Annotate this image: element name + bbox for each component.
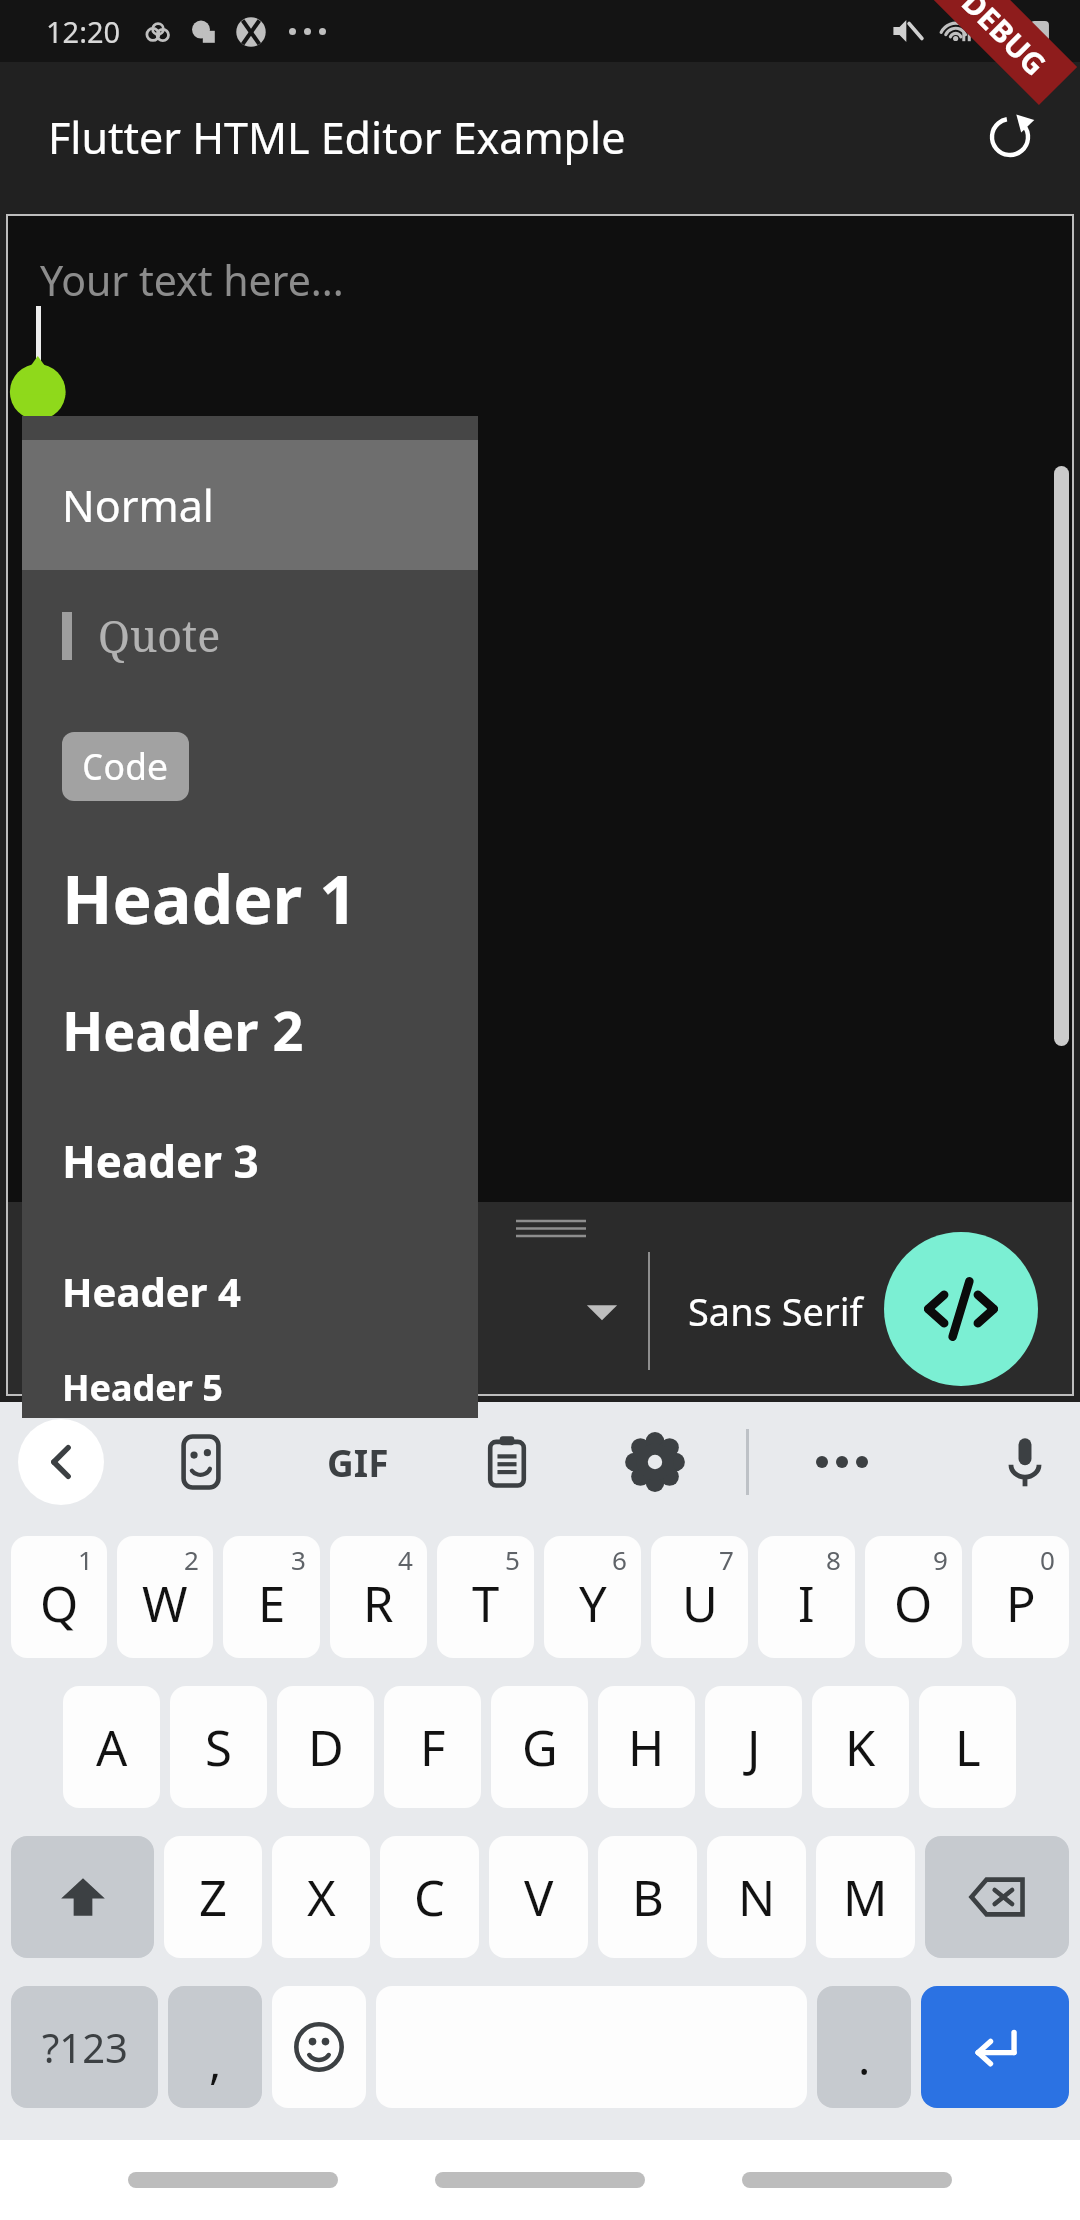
staticText: L bbox=[955, 1714, 981, 1781]
staticText: S bbox=[205, 1714, 232, 1781]
staticText: 9 bbox=[933, 1542, 948, 1577]
button[interactable]: X bbox=[272, 1836, 370, 1958]
button[interactable]: L bbox=[919, 1686, 1016, 1808]
staticText: Header 3 bbox=[62, 1131, 259, 1191]
button[interactable]: N bbox=[707, 1836, 806, 1958]
button[interactable]: K bbox=[812, 1686, 909, 1808]
button[interactable]: 5 bbox=[437, 1536, 534, 1658]
staticText: 8 bbox=[826, 1542, 841, 1577]
staticText: Z bbox=[199, 1864, 228, 1931]
button[interactable]: J bbox=[705, 1686, 802, 1808]
staticText: X bbox=[307, 1864, 336, 1931]
staticText: Q bbox=[40, 1570, 79, 1637]
button[interactable]: Header 1 bbox=[22, 832, 478, 964]
button[interactable]: Voice input bbox=[988, 1425, 1062, 1499]
staticText: Header 5 bbox=[62, 1363, 223, 1412]
button[interactable]: Header 4 bbox=[22, 1226, 478, 1356]
staticText: B bbox=[632, 1864, 664, 1931]
button[interactable]: A bbox=[63, 1686, 160, 1808]
button[interactable]: Code bbox=[22, 700, 478, 832]
button[interactable]: F bbox=[384, 1686, 481, 1808]
staticText: 6 bbox=[612, 1542, 627, 1577]
button[interactable]: V bbox=[489, 1836, 588, 1958]
button[interactable] bbox=[128, 2172, 338, 2188]
staticText: 5 bbox=[505, 1542, 520, 1577]
button[interactable]: Enter bbox=[921, 1986, 1069, 2108]
button[interactable]: Header 3 bbox=[22, 1096, 478, 1226]
button[interactable]: 0 bbox=[972, 1536, 1069, 1658]
staticText: V bbox=[524, 1864, 554, 1931]
button[interactable]: Emoji bbox=[272, 1986, 366, 2108]
button[interactable]: Header 5 bbox=[22, 1356, 478, 1418]
button[interactable]: ?123 bbox=[11, 1986, 158, 2108]
button[interactable]: 9 bbox=[865, 1536, 962, 1658]
button[interactable]: Refresh bbox=[968, 95, 1052, 179]
button[interactable]: . bbox=[817, 1986, 911, 2108]
staticText: Flutter HTML Editor Example bbox=[48, 108, 626, 167]
button[interactable]: M bbox=[816, 1836, 915, 1958]
button[interactable]: 4 bbox=[330, 1536, 427, 1658]
button[interactable]: H bbox=[598, 1686, 695, 1808]
button[interactable]: S bbox=[170, 1686, 267, 1808]
button[interactable]: Stickers bbox=[164, 1425, 238, 1499]
button[interactable]: 1 bbox=[11, 1536, 107, 1658]
staticText: D bbox=[308, 1714, 344, 1781]
button[interactable]: Toggle code view bbox=[884, 1232, 1038, 1386]
button[interactable]: G bbox=[491, 1686, 588, 1808]
button[interactable]: Clipboard bbox=[470, 1425, 544, 1499]
button[interactable]: 7 bbox=[651, 1536, 748, 1658]
button[interactable]: Normal bbox=[22, 440, 478, 570]
staticText: GIF bbox=[327, 1437, 389, 1487]
button[interactable]: D bbox=[277, 1686, 374, 1808]
staticText: 1 bbox=[78, 1542, 93, 1577]
staticText: K bbox=[845, 1714, 876, 1781]
staticText: H bbox=[628, 1714, 665, 1781]
staticText: 4 bbox=[398, 1542, 413, 1577]
staticText: Normal bbox=[62, 476, 214, 535]
staticText: , bbox=[209, 2030, 222, 2093]
staticText: F bbox=[420, 1714, 446, 1781]
button[interactable]: Quote bbox=[22, 570, 478, 700]
button[interactable]: Shift bbox=[11, 1836, 154, 1958]
staticText: U bbox=[682, 1570, 718, 1637]
staticText: 3 bbox=[291, 1542, 306, 1577]
staticText: 7 bbox=[719, 1542, 734, 1577]
staticText: 12:20 bbox=[46, 12, 121, 51]
button[interactable]: Settings bbox=[618, 1425, 692, 1499]
staticText: I bbox=[798, 1570, 815, 1637]
button[interactable]: Back bbox=[18, 1419, 104, 1505]
staticText: O bbox=[894, 1570, 933, 1637]
button[interactable]: nal bbox=[8, 1251, 648, 1371]
staticText: G bbox=[522, 1714, 558, 1781]
staticText: N bbox=[738, 1864, 776, 1931]
staticText: R bbox=[363, 1570, 394, 1637]
staticText: P bbox=[1006, 1570, 1036, 1637]
button[interactable] bbox=[742, 2172, 952, 2188]
staticText: J bbox=[747, 1714, 761, 1781]
button[interactable]: B bbox=[598, 1836, 697, 1958]
staticText: Header 4 bbox=[62, 1264, 241, 1318]
button[interactable]: More options bbox=[805, 1425, 879, 1499]
button[interactable]: 6 bbox=[544, 1536, 641, 1658]
button[interactable]: Z bbox=[164, 1836, 262, 1958]
button[interactable]: 3 bbox=[223, 1536, 320, 1658]
button[interactable]: Sans Serif bbox=[688, 1285, 863, 1337]
staticText: ?123 bbox=[42, 2020, 128, 2074]
staticText: Y bbox=[579, 1570, 607, 1637]
staticText: Quote bbox=[98, 606, 221, 665]
button[interactable] bbox=[435, 2172, 645, 2188]
staticText: C bbox=[414, 1864, 445, 1931]
button[interactable]: Header 2 bbox=[22, 964, 478, 1096]
button[interactable]: C bbox=[380, 1836, 479, 1958]
button[interactable]: 2 bbox=[117, 1536, 213, 1658]
button[interactable]: , bbox=[168, 1986, 262, 2108]
staticText: DEBUG bbox=[953, 0, 1056, 85]
button[interactable]: GIF keyboard bbox=[314, 1418, 402, 1506]
button[interactable]: Backspace bbox=[925, 1836, 1069, 1958]
staticText: E bbox=[258, 1570, 286, 1637]
staticText: Your text here... bbox=[40, 252, 344, 308]
button[interactable]: 8 bbox=[758, 1536, 855, 1658]
staticText: 0 bbox=[1040, 1542, 1055, 1577]
